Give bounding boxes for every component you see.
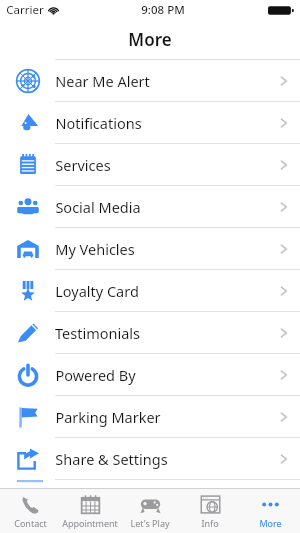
button[interactable]: Services xyxy=(0,144,300,185)
staticText: Near Me Alert xyxy=(55,71,150,91)
button[interactable]: Share & Settings xyxy=(0,438,300,479)
button[interactable]: My Vehicles xyxy=(0,228,300,269)
staticText: Services xyxy=(55,155,111,175)
staticText: Carrier xyxy=(6,2,44,18)
staticText: Powered By xyxy=(55,365,136,385)
staticText: Contact xyxy=(14,517,47,529)
button[interactable]: Let's Play xyxy=(120,489,180,533)
button[interactable]: Contact xyxy=(0,489,60,533)
button[interactable]: Near Me Alert xyxy=(0,60,300,101)
staticText: Testimonials xyxy=(55,323,140,343)
staticText: Loyalty Card xyxy=(55,281,139,301)
staticText: More xyxy=(128,28,172,51)
button[interactable]: Notifications xyxy=(0,102,300,143)
staticText: Social Media xyxy=(55,197,141,217)
staticText: Share & Settings xyxy=(55,449,168,469)
button[interactable]: More xyxy=(240,489,300,533)
button[interactable]: Loyalty Card xyxy=(0,270,300,311)
staticText: Parking Marker xyxy=(55,407,161,427)
staticText: 9:08 PM xyxy=(141,2,185,18)
staticText: Info xyxy=(201,517,219,529)
staticText: Let's Play xyxy=(130,517,170,529)
staticText: Notifications xyxy=(55,113,142,133)
button[interactable]: Powered By xyxy=(0,354,300,395)
button[interactable]: Testimonials xyxy=(0,312,300,353)
button[interactable]: Appointment xyxy=(60,489,120,533)
button[interactable]: Info xyxy=(180,489,240,533)
staticText: Appointment xyxy=(62,517,118,529)
button[interactable]: Social Media xyxy=(0,186,300,227)
staticText: My Vehicles xyxy=(55,239,135,259)
button[interactable]: Parking Marker xyxy=(0,396,300,437)
staticText: More xyxy=(259,517,282,529)
